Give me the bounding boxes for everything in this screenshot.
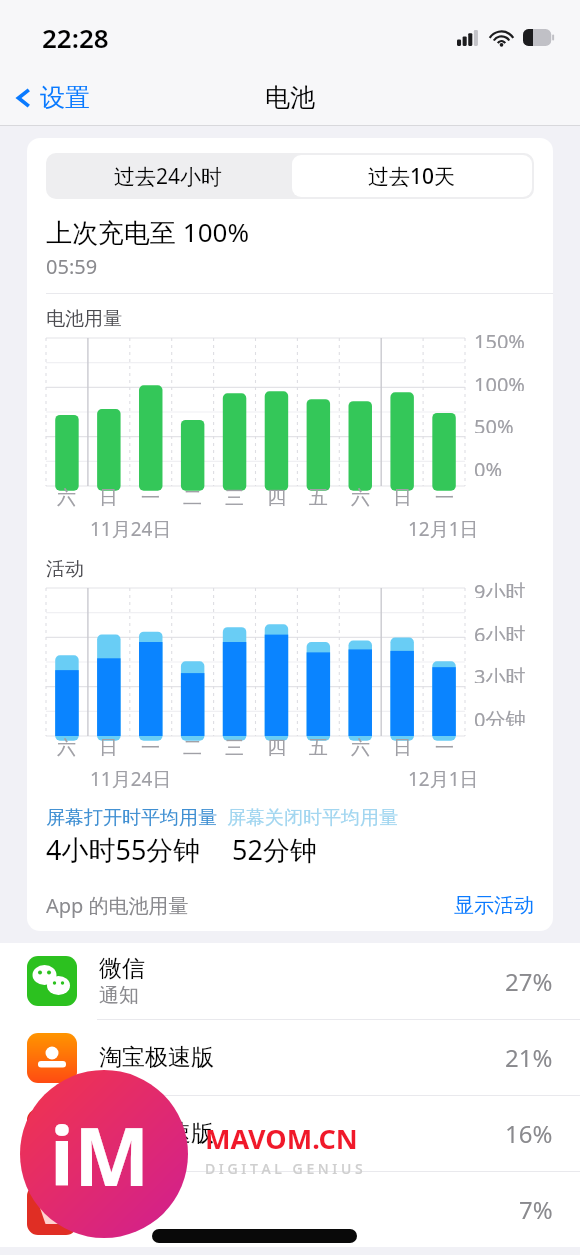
staticText: 21% xyxy=(505,1041,553,1074)
button[interactable]: 过去24小时 xyxy=(46,153,290,199)
staticText: 设置 xyxy=(40,82,90,113)
staticText: 一 xyxy=(141,486,160,510)
staticText: 一 xyxy=(141,736,160,760)
staticText: 二 xyxy=(183,486,202,510)
staticText: 16% xyxy=(505,1117,553,1150)
button[interactable]: 显示活动 xyxy=(454,893,534,918)
staticText: 五 xyxy=(309,736,328,760)
staticText: 上次充电至 100% xyxy=(46,214,249,250)
staticText: 52分钟 xyxy=(232,831,317,868)
button[interactable]: 拼多多 xyxy=(0,1172,580,1247)
staticText: D I G I T A L G E N I U S xyxy=(205,1159,363,1178)
staticText: 12月1日 xyxy=(408,766,479,792)
staticText: 微信 xyxy=(99,954,145,983)
staticText: 京东极速版 xyxy=(99,1119,214,1148)
staticText: 三 xyxy=(225,736,244,760)
staticText: 日 xyxy=(99,486,118,510)
staticText: 27% xyxy=(505,965,553,998)
staticText: 05:59 xyxy=(46,253,98,280)
staticText: 一 xyxy=(435,486,454,510)
staticText: MAVOM.CN xyxy=(205,1120,358,1157)
staticText: 拼多多 xyxy=(99,1195,168,1224)
staticText: 六 xyxy=(351,736,370,760)
staticText: 二 xyxy=(183,736,202,760)
staticText: 50% xyxy=(474,413,514,433)
button[interactable]: Back xyxy=(12,82,90,113)
staticText: 活动 xyxy=(46,557,84,581)
staticText: 四 xyxy=(267,486,286,510)
staticText: 日 xyxy=(393,736,412,760)
staticText: 11月24日 xyxy=(90,516,172,542)
staticText: 11月24日 xyxy=(90,766,172,792)
staticText: 显示活动 xyxy=(454,893,534,918)
staticText: 五 xyxy=(309,486,328,510)
button[interactable]: 过去10天 xyxy=(292,155,532,197)
staticText: 0% xyxy=(474,456,503,476)
staticText: 三 xyxy=(225,486,244,510)
staticText: iM xyxy=(50,1100,150,1209)
button[interactable]: 微信 xyxy=(0,943,580,1019)
staticText: 一 xyxy=(435,736,454,760)
staticText: 4小时55分钟 xyxy=(46,831,201,868)
staticText: 12月1日 xyxy=(408,516,479,542)
staticText: 日 xyxy=(393,486,412,510)
button[interactable]: 淘宝极速版 xyxy=(0,1020,580,1095)
staticText: 四 xyxy=(267,736,286,760)
staticText: 3小时 xyxy=(474,663,526,683)
staticText: 日 xyxy=(99,736,118,760)
staticText: 0分钟 xyxy=(474,706,526,726)
staticText: 6小时 xyxy=(474,621,526,641)
staticText: App 的电池用量 xyxy=(46,892,189,919)
staticText: 9小时 xyxy=(474,578,526,598)
staticText: 7% xyxy=(519,1193,553,1226)
staticText: 六 xyxy=(57,486,76,510)
staticText: 电池 xyxy=(265,82,315,113)
staticText: 电池用量 xyxy=(46,307,122,331)
staticText: 通知 xyxy=(99,983,139,1008)
staticText: 淘宝极速版 xyxy=(99,1043,214,1072)
staticText: 150% xyxy=(474,328,525,348)
staticText: 六 xyxy=(57,736,76,760)
staticText: 六 xyxy=(351,486,370,510)
button[interactable]: 京东极速版 xyxy=(0,1096,580,1171)
staticText: 过去10天 xyxy=(368,162,456,191)
staticText: 22:28 xyxy=(42,20,109,55)
staticText: 过去24小时 xyxy=(114,162,223,191)
other: Back xyxy=(12,83,36,113)
staticText: 屏幕打开时平均用量 xyxy=(46,806,217,830)
staticText: 100% xyxy=(474,371,525,391)
staticText: 屏幕关闭时平均用量 xyxy=(227,806,398,830)
